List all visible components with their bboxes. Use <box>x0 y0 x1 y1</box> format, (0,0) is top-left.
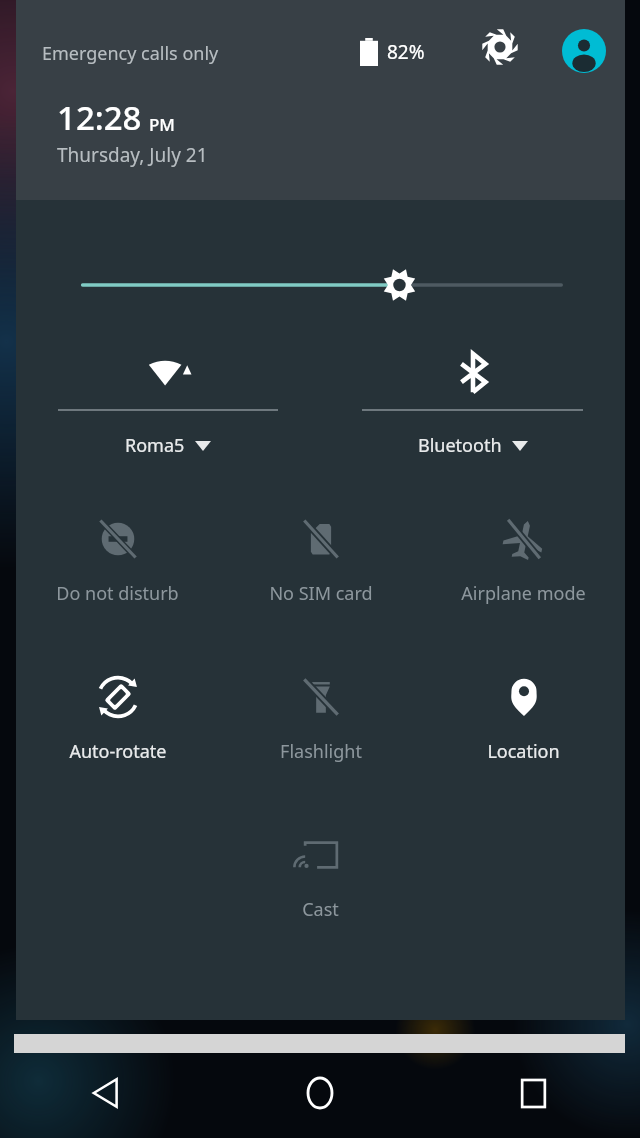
button[interactable]: Airplane mode <box>422 499 625 624</box>
staticText: PM <box>149 113 175 136</box>
staticText: Airplane mode <box>461 581 586 606</box>
button[interactable]: Auto-rotate <box>16 657 219 782</box>
staticText: Thursday, July 21 <box>57 142 208 168</box>
staticText: Cast <box>302 897 339 922</box>
button[interactable]: Recents <box>497 1057 569 1129</box>
staticText: Emergency calls only <box>42 41 219 66</box>
staticText: Location <box>487 739 560 764</box>
button[interactable]: Home <box>284 1057 356 1129</box>
staticText: Roma5 <box>125 433 185 458</box>
staticText: Flashlight <box>280 739 362 764</box>
staticText: Auto-rotate <box>69 739 167 764</box>
button[interactable]: Do not disturb <box>16 499 219 624</box>
staticText: 12:28 <box>57 95 142 140</box>
button[interactable]: Roma5 <box>16 337 320 472</box>
button[interactable]: Location <box>422 657 625 782</box>
staticText: No SIM card <box>269 581 373 606</box>
button[interactable]: User <box>560 27 608 75</box>
staticText: Bluetooth <box>418 433 502 458</box>
button[interactable]: No SIM card <box>219 499 422 624</box>
button[interactable]: Back <box>71 1057 143 1129</box>
button[interactable]: Brightness <box>16 260 625 310</box>
button[interactable]: Bluetooth <box>320 337 625 472</box>
button[interactable]: Cast <box>219 815 422 940</box>
button[interactable]: Settings <box>477 24 523 70</box>
button[interactable]: Flashlight <box>219 657 422 782</box>
staticText: Do not disturb <box>56 581 179 606</box>
staticText: 82% <box>387 39 425 65</box>
